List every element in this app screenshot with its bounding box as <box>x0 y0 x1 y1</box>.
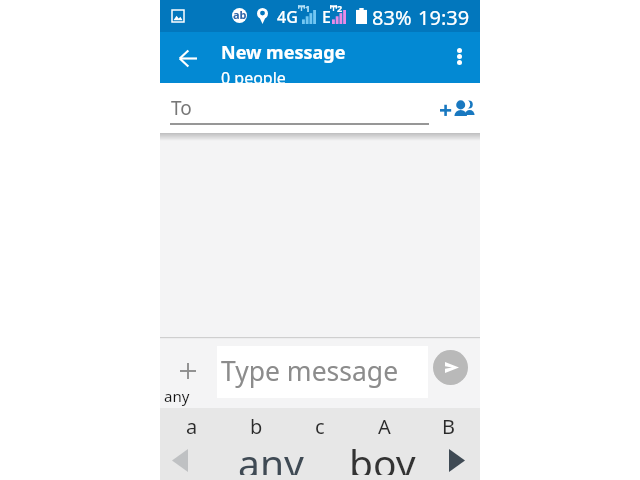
staticText: 2 <box>337 2 343 12</box>
button[interactable]: Type message <box>217 346 428 398</box>
staticText: boy <box>349 436 416 475</box>
staticText: any <box>164 386 190 406</box>
button[interactable]: c <box>288 408 352 445</box>
staticText: c <box>315 413 325 440</box>
staticText: any <box>238 436 304 475</box>
button[interactable]: More options <box>441 38 477 74</box>
staticText: E <box>322 6 331 28</box>
button[interactable]: Send message <box>433 350 468 385</box>
button[interactable]: b <box>224 408 288 445</box>
staticText: 0 people <box>221 67 286 89</box>
button[interactable]: A <box>352 408 416 445</box>
staticText: B <box>442 413 455 440</box>
staticText: 19:39 <box>418 4 470 31</box>
button[interactable]: Add contact <box>438 89 478 129</box>
staticText: 1 <box>305 2 311 12</box>
button[interactable]: a <box>160 408 224 445</box>
staticText: New message <box>221 40 346 65</box>
staticText: 83% <box>372 4 412 31</box>
staticText: ab <box>233 7 247 22</box>
staticText: Type message <box>221 353 399 389</box>
button[interactable]: boy <box>328 441 424 480</box>
staticText: a <box>186 413 198 440</box>
staticText: To <box>171 95 192 121</box>
button[interactable]: Attach <box>172 355 204 387</box>
button[interactable]: Previous suggestions <box>160 441 200 480</box>
staticText: A <box>378 413 391 440</box>
button[interactable]: B <box>416 408 480 445</box>
button[interactable]: Back <box>170 40 206 76</box>
button[interactable]: any <box>216 441 320 480</box>
staticText: 4G <box>277 6 298 28</box>
staticText: b <box>250 413 263 440</box>
button[interactable]: Next suggestions <box>440 441 480 480</box>
